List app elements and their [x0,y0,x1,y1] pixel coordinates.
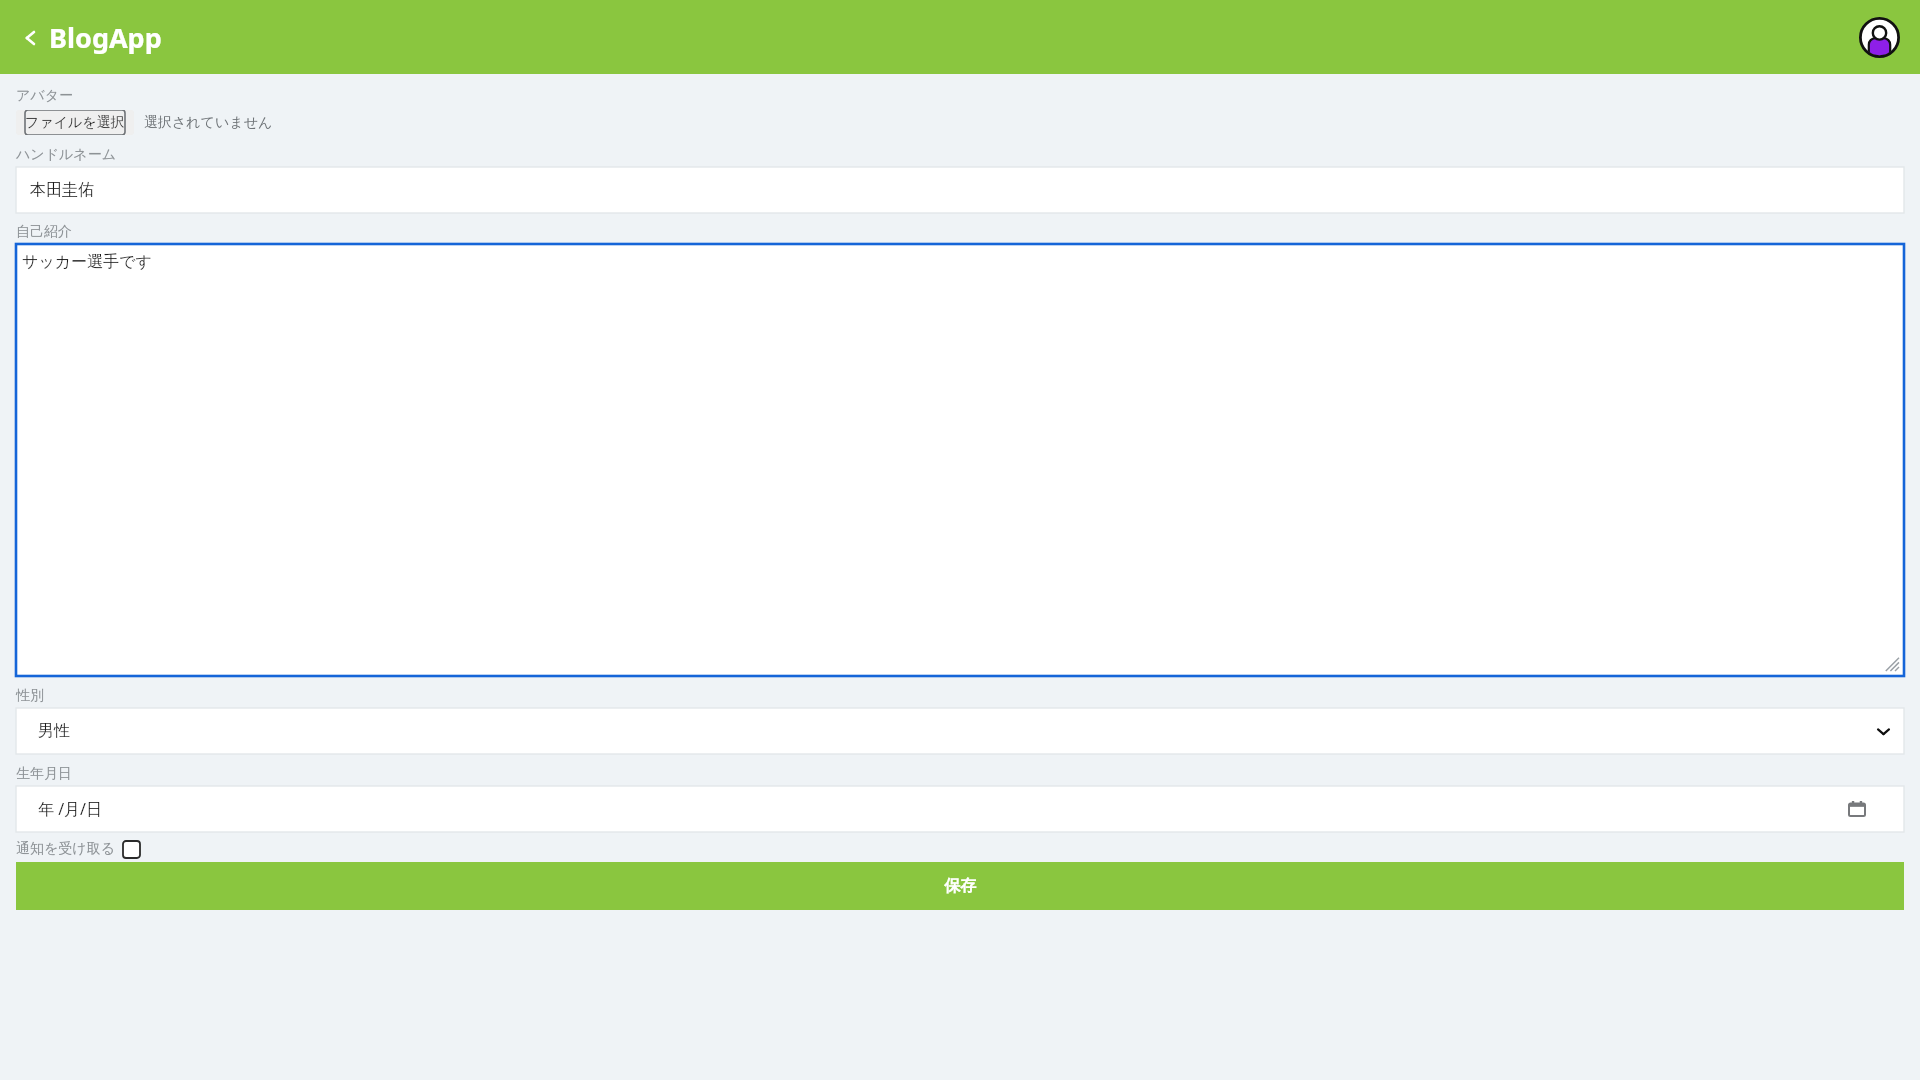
other: Back [20,28,40,48]
staticText: 性別 [16,687,44,705]
staticText: 男性 [38,721,70,741]
staticText: 本田圭佑 [30,180,94,200]
button[interactable]: Account [1859,17,1900,58]
button[interactable]: 通知を受け取る [123,841,140,858]
staticText: 生年月日 [16,765,72,783]
staticText: アバター [16,87,73,105]
button[interactable]: 男性 [16,708,1904,754]
staticText: 自己紹介 [16,223,72,241]
staticText: 選択されていません [144,114,273,132]
staticText: サッカー選手です [22,252,152,272]
staticText: 保存 [944,876,976,896]
staticText: BlogApp [49,19,162,56]
button[interactable]: 保存 [16,862,1904,910]
button[interactable]: Back [14,15,168,60]
button[interactable]: Show date picker [1848,800,1866,818]
button[interactable]: ファイルを選択 [16,110,134,135]
staticText: ファイルを選択 [25,114,125,132]
staticText: 年 /月/日 [38,798,103,820]
button[interactable]: 年 /月/日 [16,786,1904,832]
staticText: 通知を受け取る [16,840,115,858]
staticText: ハンドルネーム [16,146,116,164]
button[interactable]: 本田圭佑 [16,167,1904,213]
button[interactable]: サッカー選手です [16,244,1904,676]
